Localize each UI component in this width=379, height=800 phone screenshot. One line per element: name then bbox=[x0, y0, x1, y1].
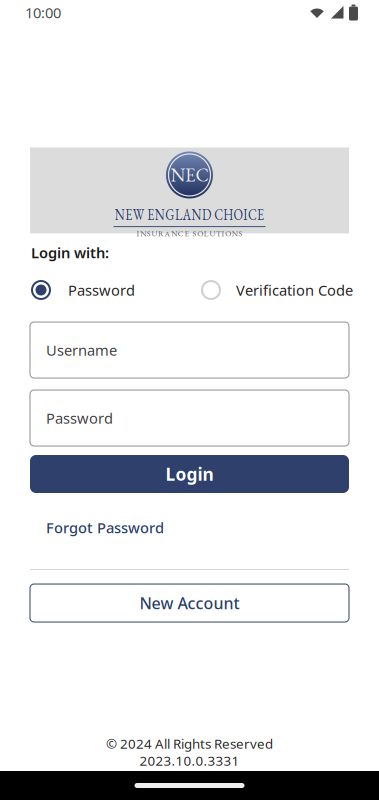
staticText: Username bbox=[46, 340, 117, 360]
staticText: New Account bbox=[139, 592, 239, 614]
staticText: Login bbox=[165, 462, 213, 485]
staticText: INSURANCE SOLUTIONS bbox=[137, 228, 242, 238]
staticText: Login with: bbox=[31, 243, 109, 262]
staticText: Password bbox=[46, 408, 113, 428]
staticText: Password bbox=[68, 280, 135, 300]
staticText: Verification Code bbox=[236, 280, 353, 300]
staticText: NEC bbox=[170, 163, 208, 187]
staticText: 10:00 bbox=[25, 3, 61, 22]
staticText: © 2024 All Rights Reserved bbox=[106, 735, 273, 752]
staticText: Forgot Password bbox=[46, 518, 164, 537]
staticText: 2023.10.0.3331 bbox=[139, 752, 239, 769]
staticText: NEW ENGLAND CHOICE bbox=[86, 202, 293, 225]
